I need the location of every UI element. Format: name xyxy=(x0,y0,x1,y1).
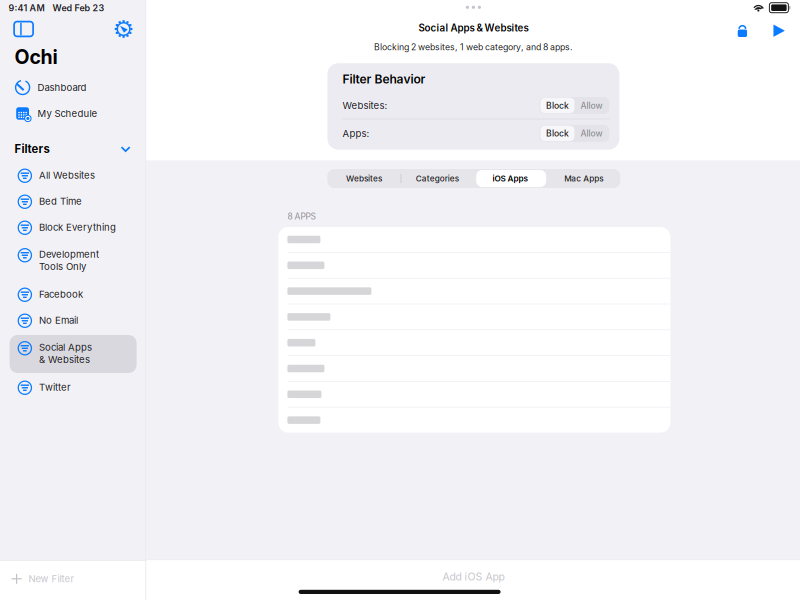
staticText: Allow xyxy=(580,128,602,139)
staticText: Ochi xyxy=(15,45,58,69)
button[interactable] xyxy=(278,330,670,356)
staticText: Filters xyxy=(15,142,50,156)
staticText: Block xyxy=(546,100,569,111)
button[interactable] xyxy=(278,382,670,408)
button[interactable] xyxy=(278,227,670,253)
staticText: All Websites xyxy=(39,169,95,181)
button[interactable]: Settings xyxy=(113,18,135,40)
staticText: Apps: xyxy=(342,128,369,139)
button[interactable]: Allow xyxy=(574,98,608,113)
staticText: & Websites xyxy=(39,354,90,365)
staticText: Tools Only xyxy=(39,261,86,272)
button[interactable]: Social Apps xyxy=(10,335,137,373)
staticText: Filter Behavior xyxy=(342,72,425,86)
staticText: iOS Apps xyxy=(492,173,528,183)
button[interactable]: Categories xyxy=(401,169,474,188)
button[interactable]: Mac Apps xyxy=(547,169,620,188)
button[interactable]: Websites xyxy=(327,169,401,188)
button[interactable]: Start Filter xyxy=(767,22,789,40)
staticText: Social Apps xyxy=(39,341,92,353)
button[interactable]: Block Everything xyxy=(10,216,137,239)
staticText: Categories xyxy=(416,173,459,183)
staticText: Wed Feb 23 xyxy=(53,3,105,13)
button[interactable] xyxy=(278,356,670,382)
staticText: Websites: xyxy=(342,100,387,111)
button[interactable]: Lock Filter xyxy=(731,22,753,40)
staticText: Facebook xyxy=(39,288,83,300)
staticText: Bed Time xyxy=(39,195,82,207)
staticText: Block Everything xyxy=(39,221,116,233)
staticText: Twitter xyxy=(39,381,71,393)
button[interactable]: Dashboard xyxy=(0,75,146,100)
staticText: Dashboard xyxy=(38,82,87,93)
button[interactable]: Facebook xyxy=(10,283,137,306)
staticText: Allow xyxy=(580,100,602,111)
staticText: Blocking 2 websites, 1 web category, and… xyxy=(374,42,573,52)
button[interactable]: All Websites xyxy=(10,164,137,187)
button[interactable] xyxy=(278,408,670,433)
button[interactable]: Collapse Filters xyxy=(116,140,136,158)
button[interactable]: Twitter xyxy=(10,376,137,399)
staticText: Add iOS App xyxy=(442,570,504,583)
staticText: 9:41 AM xyxy=(9,3,45,13)
staticText: Development xyxy=(39,248,99,260)
button[interactable]: Block xyxy=(540,126,574,141)
staticText: Social Apps & Websites xyxy=(418,22,528,34)
button[interactable] xyxy=(278,253,670,279)
button[interactable]: Hide Sidebar xyxy=(12,18,36,40)
button[interactable]: My Schedule xyxy=(0,100,146,127)
button[interactable]: iOS Apps xyxy=(474,169,547,188)
staticText: Mac Apps xyxy=(564,173,603,183)
staticText: New Filter xyxy=(29,573,75,585)
button[interactable]: No Email xyxy=(10,309,137,332)
button[interactable]: Block xyxy=(540,98,574,113)
staticText: Websites xyxy=(346,173,382,183)
button[interactable]: Allow xyxy=(574,126,608,141)
button[interactable]: Bed Time xyxy=(10,190,137,213)
staticText: 8 APPS xyxy=(287,211,315,222)
button[interactable] xyxy=(278,304,670,330)
staticText: No Email xyxy=(39,314,78,326)
staticText: My Schedule xyxy=(38,108,98,119)
button[interactable]: Development xyxy=(10,242,137,280)
staticText: Block xyxy=(546,128,569,139)
button[interactable]: Add iOS App xyxy=(413,569,533,585)
button[interactable]: New Filter xyxy=(0,570,146,588)
button[interactable] xyxy=(278,279,670,304)
